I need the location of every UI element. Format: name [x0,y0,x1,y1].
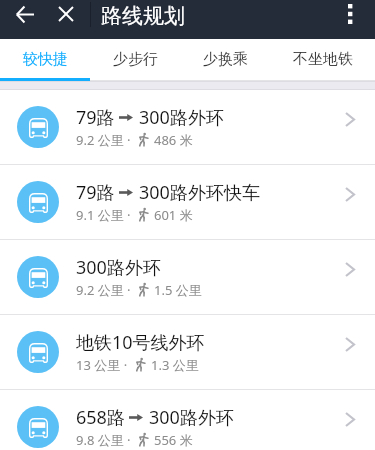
button[interactable]: 不坐地铁 [270,39,375,81]
button[interactable]: 少步行 [90,39,180,81]
staticText: 较快捷 [23,50,68,69]
staticText: 不坐地铁 [293,50,353,69]
button[interactable]: 地铁10号线外环 [0,315,375,390]
button[interactable]: Back [8,0,41,29]
staticText: 9.8 公里 · [76,431,131,449]
staticText: 601 米 [154,206,193,224]
staticText: 556 米 [154,431,193,449]
staticText: 300路外环 [149,405,234,430]
staticText: 658路 [76,405,125,430]
staticText: 13 公里 · [76,356,128,374]
button[interactable]: 658路 [0,390,375,450]
staticText: 300路外环 [76,255,161,280]
button[interactable]: 79路 [0,165,375,240]
staticText: 路线规划 [101,3,185,29]
button[interactable]: 79路 [0,90,375,165]
staticText: 少步行 [113,50,158,69]
staticText: 486 米 [154,131,193,149]
staticText: 1.3 公里 [151,356,199,374]
staticText: 300路外环快车 [139,180,260,205]
staticText: 9.1 公里 · [76,206,131,224]
button[interactable]: Close [51,0,80,28]
staticText: 少换乘 [203,50,248,69]
button[interactable]: 300路外环 [0,240,375,315]
staticText: 79路 [76,105,115,130]
staticText: 300路外环 [139,105,224,130]
staticText: 1.5 公里 [154,281,202,299]
staticText: 地铁10号线外环 [76,330,205,355]
button[interactable]: More options [334,0,366,28]
button[interactable]: 较快捷 [0,39,90,81]
staticText: 9.2 公里 · [76,131,131,149]
button[interactable]: 少换乘 [180,39,270,81]
staticText: 9.2 公里 · [76,281,131,299]
staticText: 79路 [76,180,115,205]
